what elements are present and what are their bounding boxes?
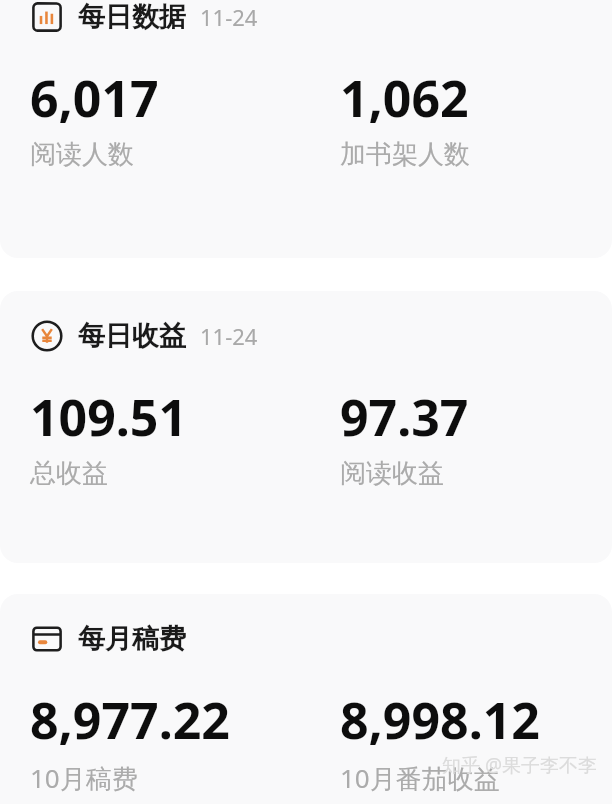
staticText: 加书架人数	[340, 138, 470, 171]
staticText: 总收益	[30, 457, 108, 490]
staticText: 97.37	[340, 383, 469, 451]
staticText: 109.51	[30, 383, 188, 451]
other: 每日收益	[30, 319, 64, 353]
staticText: 11-24	[200, 321, 258, 351]
staticText: 10月番茄收益	[340, 760, 500, 796]
staticText: 阅读收益	[340, 457, 444, 490]
staticText: 每日收益	[78, 319, 186, 353]
button[interactable]: 每日数据	[0, 0, 612, 258]
button[interactable]: 每日收益	[0, 291, 612, 563]
staticText: 知乎 @果子李不李	[442, 752, 598, 778]
staticText: 11-24	[200, 2, 258, 32]
staticText: 8,998.12	[340, 686, 540, 754]
other: 每日数据	[30, 0, 64, 34]
staticText: 阅读人数	[30, 138, 134, 171]
staticText: 1,062	[340, 64, 469, 132]
staticText: 8,977.22	[30, 686, 230, 754]
staticText: 每日数据	[78, 0, 186, 34]
other: 每月稿费	[30, 622, 64, 656]
staticText: 每月稿费	[78, 622, 186, 656]
staticText: 6,017	[30, 64, 159, 132]
staticText: 10月稿费	[30, 760, 138, 796]
button[interactable]: 每月稿费	[0, 594, 612, 804]
